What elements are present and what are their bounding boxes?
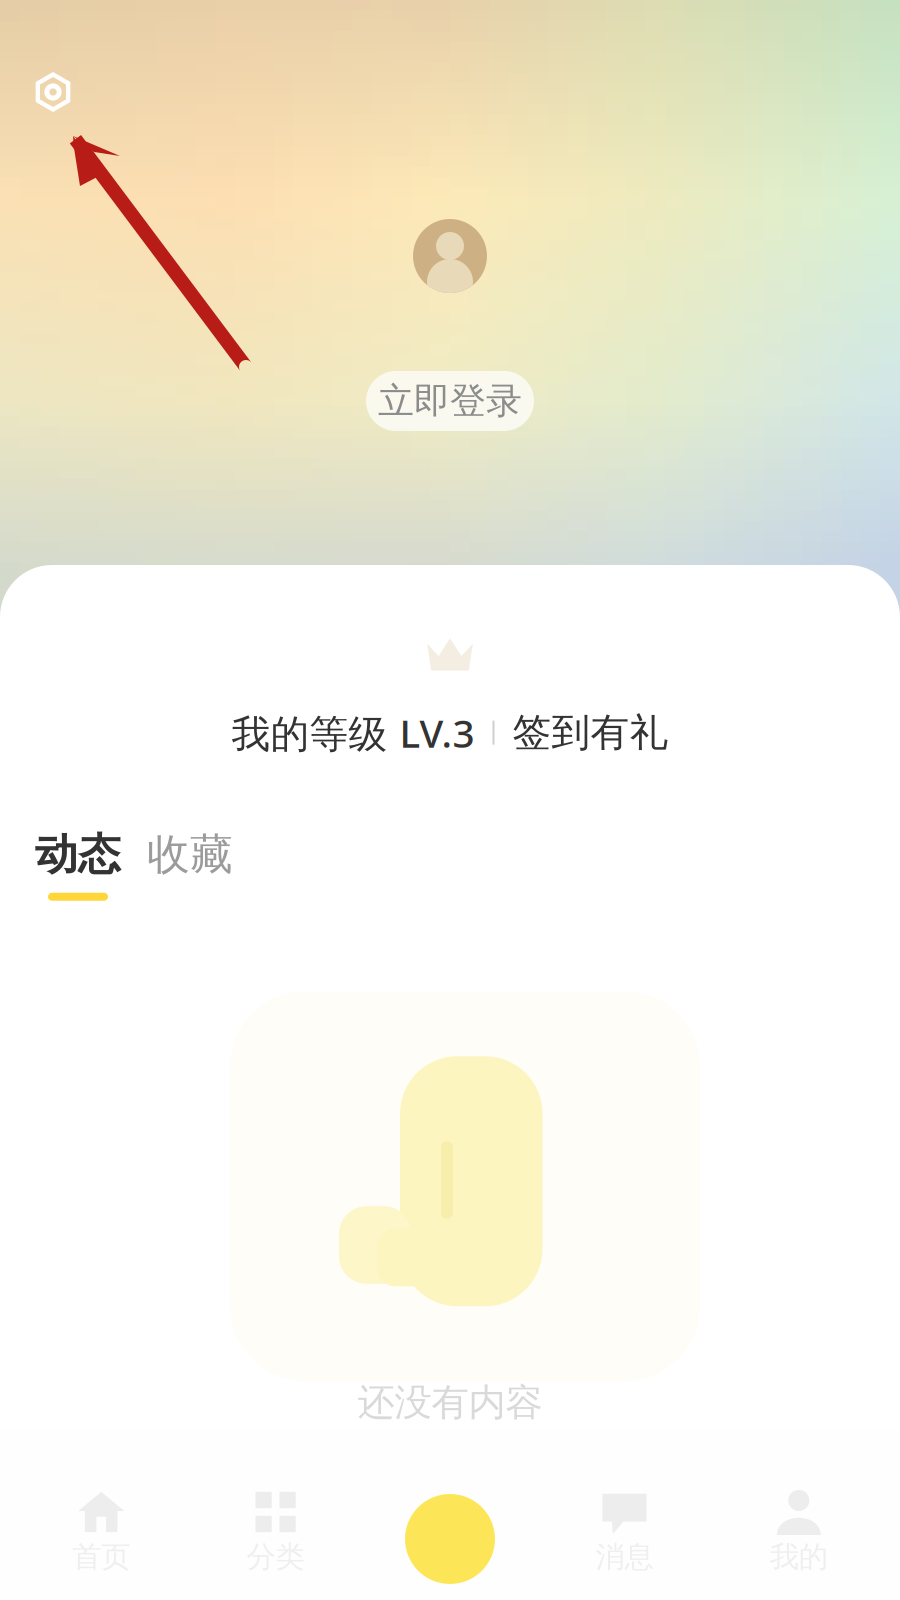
staticText: 收藏 [147,828,233,881]
staticText: 我的 [770,1539,828,1575]
button[interactable]: Create [363,1430,537,1600]
button[interactable]: Profile [712,1430,886,1600]
staticText: 还没有内容 [357,1380,542,1426]
button[interactable]: Settings [19,58,87,126]
staticText: 分类 [247,1539,305,1575]
staticText: 我的等级 LV.3 [231,707,474,758]
button[interactable]: 收藏 [144,828,236,901]
staticText: 消息 [595,1539,653,1575]
button[interactable]: Home [14,1430,188,1600]
staticText: 签到有礼 [512,709,668,756]
button[interactable]: 动态 [32,828,124,901]
staticText: 动态 [35,828,121,881]
staticText: 立即登录 [378,379,522,423]
button[interactable]: Messages [537,1430,712,1600]
button[interactable]: 立即登录 [366,371,534,431]
staticText: 首页 [72,1539,130,1575]
button[interactable]: Categories [188,1430,363,1600]
